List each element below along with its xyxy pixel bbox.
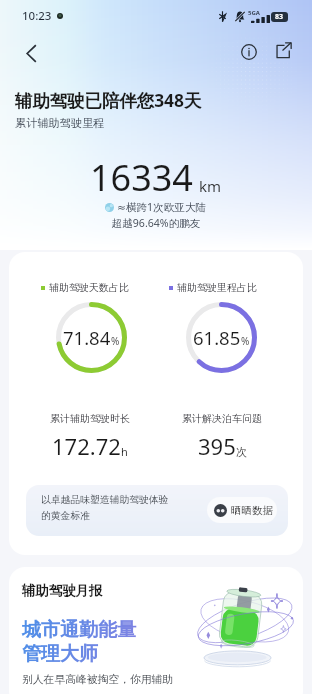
staticText: 5GA: [248, 9, 260, 17]
button[interactable]: 晒晒数据: [207, 497, 277, 523]
staticText: 辅助驾驶天数占比: [49, 281, 129, 294]
staticText: %: [111, 334, 120, 348]
staticText: ≈横跨1次欧亚大陆: [117, 200, 207, 214]
staticText: 10:23: [22, 8, 52, 24]
staticText: 辅助驾驶月报: [22, 582, 103, 599]
button[interactable]: Share: [267, 34, 300, 67]
button[interactable]: Info: [232, 35, 265, 68]
staticText: 累计辅助驾驶里程: [15, 116, 105, 130]
staticText: h: [121, 444, 128, 459]
staticText: 172.72: [52, 431, 121, 461]
staticText: 别人在早高峰被掏空，你用辅助: [22, 673, 174, 687]
staticText: 83: [275, 12, 284, 22]
staticText: 超越96.64%的鹏友: [0, 216, 312, 230]
staticText: 城市通勤能量 管理大师: [22, 618, 136, 666]
staticText: 累计解决泊车问题: [182, 412, 262, 425]
staticText: 晒晒数据: [231, 504, 273, 517]
staticText: 以卓越品味塑造辅助驾驶体验 的黄金标准: [41, 494, 169, 522]
staticText: km: [199, 176, 222, 196]
button[interactable]: Back: [14, 37, 47, 70]
staticText: 71.84: [63, 325, 111, 350]
staticText: 次: [236, 445, 247, 459]
staticText: 395: [198, 431, 236, 461]
staticText: 16334: [90, 153, 193, 202]
staticText: 辅助驾驶已陪伴您348天: [15, 88, 202, 112]
staticText: 61.85: [193, 325, 241, 350]
staticText: 累计辅助驾驶时长: [50, 412, 130, 425]
staticText: %: [241, 334, 250, 348]
staticText: 辅助驾驶里程占比: [177, 281, 257, 294]
